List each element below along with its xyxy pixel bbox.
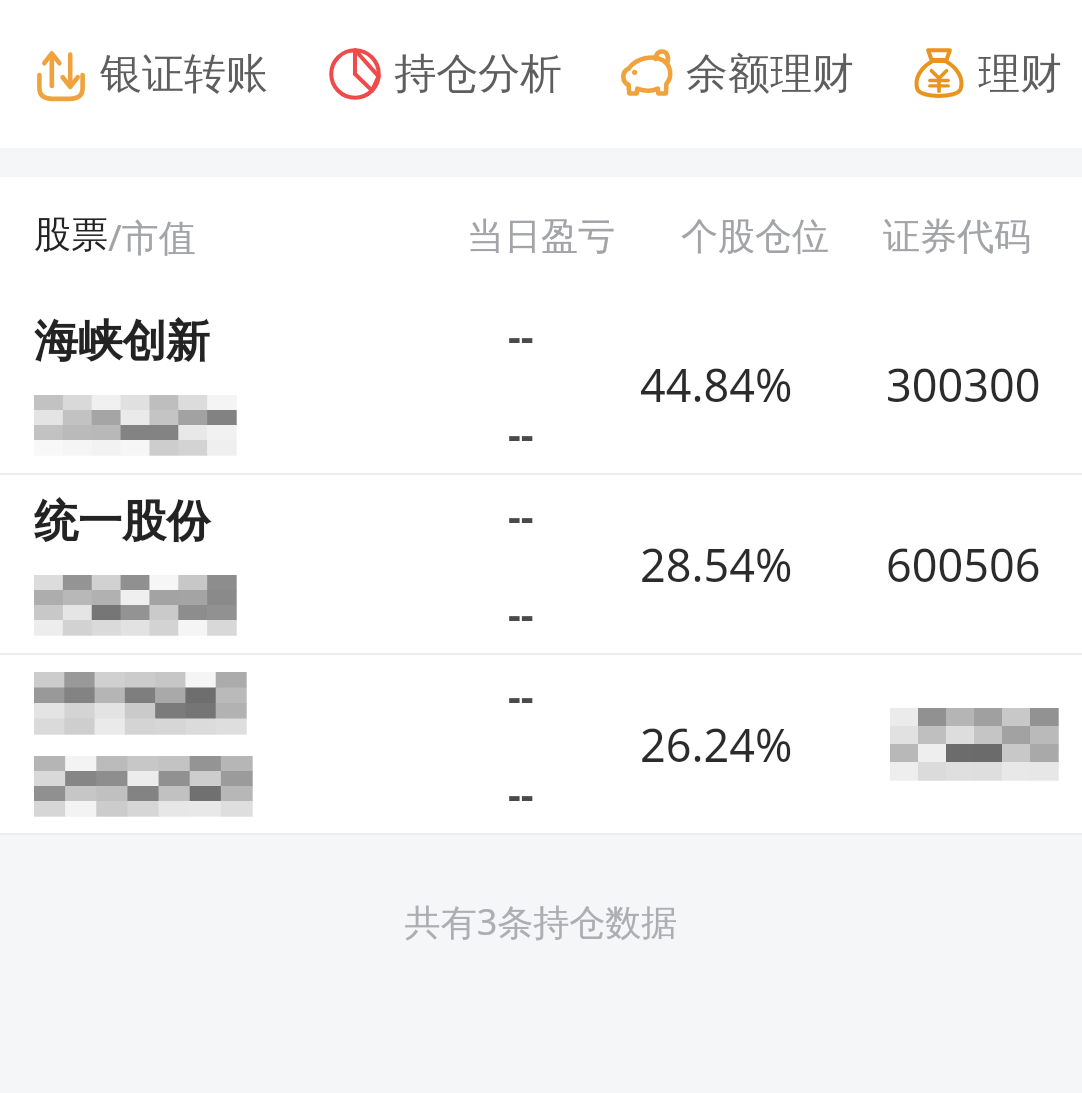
staticText: 300300 [886, 354, 1041, 415]
staticText: 个股仓位 [648, 213, 862, 260]
other: Bank transfer [34, 47, 88, 101]
staticText: 44.84% [640, 354, 793, 415]
staticText: 持仓分析 [394, 48, 562, 101]
staticText: 共有3条持仓数据 [0, 897, 1082, 946]
staticText: -- [508, 488, 534, 542]
staticText: -- [508, 586, 534, 640]
button[interactable]: Balance wealth [616, 47, 858, 101]
staticText: 银证转账 [100, 48, 268, 101]
staticText: 当日盈亏 [434, 213, 648, 260]
button[interactable]: -- [0, 655, 1082, 833]
staticText: 26.24% [640, 714, 793, 775]
staticText: 统一股份 [34, 494, 210, 549]
staticText: 余额理财 [686, 48, 854, 101]
button[interactable]: Wealth management [908, 47, 1066, 101]
staticText: -- [508, 308, 534, 362]
staticText: 股票 [34, 211, 108, 258]
button[interactable]: 海峡创新 [0, 295, 1082, 473]
staticText: 600506 [886, 534, 1041, 595]
other: Balance wealth [620, 47, 674, 101]
staticText: -- [508, 766, 534, 820]
other: Holdings analysis [328, 47, 382, 101]
staticText: -- [508, 406, 534, 460]
button[interactable]: 统一股份 [0, 475, 1082, 653]
staticText: 海峡创新 [34, 314, 210, 369]
staticText: 证券代码 [862, 213, 1052, 260]
button[interactable]: Holdings analysis [324, 47, 566, 101]
staticText: /市值 [108, 211, 196, 262]
staticText: 理财 [978, 48, 1062, 101]
staticText: -- [508, 668, 534, 722]
other: Wealth management [912, 47, 966, 101]
button[interactable]: Bank transfer [30, 47, 272, 101]
staticText: 28.54% [640, 534, 793, 595]
